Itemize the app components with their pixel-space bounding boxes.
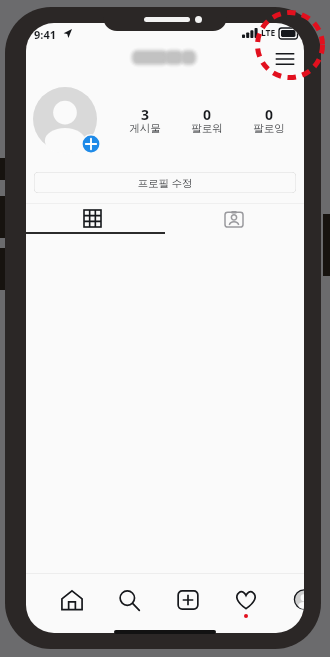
button[interactable]: 홈 [48,579,96,619]
button[interactable]: 메뉴 [268,43,302,75]
button[interactable]: 그리드 보기 [26,205,165,233]
staticText: 팔로워 [178,122,236,138]
button[interactable]: 0 [178,103,236,141]
button[interactable]: 프로필 [280,579,304,619]
staticText: 0 [178,105,236,123]
button[interactable]: 태그된 사진 [165,205,304,233]
staticText: 팔로잉 [240,122,298,138]
button[interactable]: 프로필 사진 [33,87,97,151]
button[interactable]: 활동 [222,579,270,619]
staticText: 0 [240,105,298,123]
button[interactable]: 프로필 수정 [34,172,296,193]
button[interactable]: 3 [116,103,174,141]
staticText: LTE [261,27,276,39]
staticText: 9:41 [34,27,56,42]
staticText: 3 [116,105,174,123]
button[interactable]: 검색 [105,579,153,619]
staticText: 프로필 수정 [34,176,296,191]
staticText: 게시물 [116,122,174,138]
button[interactable]: 만들기 [164,579,212,619]
button[interactable]: 0 [240,103,298,141]
